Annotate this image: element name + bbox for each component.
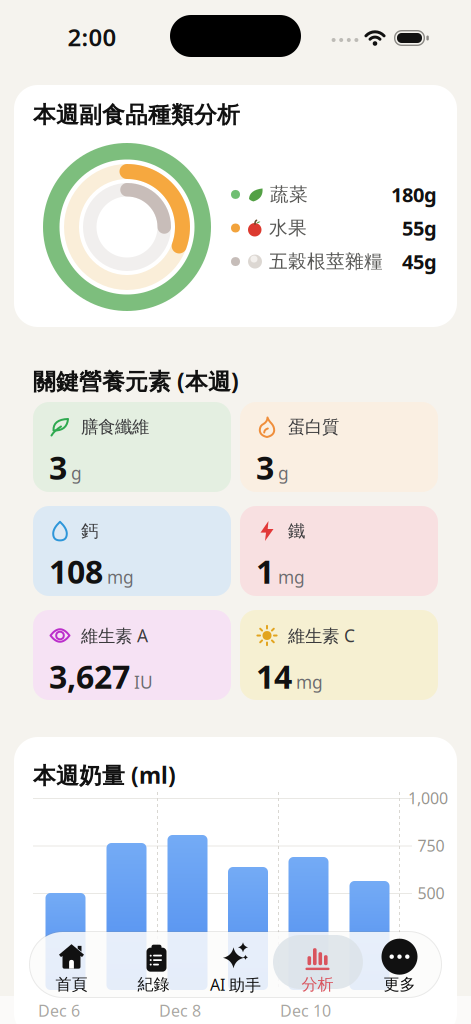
staticText: 首頁 xyxy=(55,975,87,994)
staticText: 維生素 C xyxy=(288,624,355,647)
staticText: 膳食纖維 xyxy=(81,416,149,438)
staticText: 分析 xyxy=(301,975,333,994)
staticText: 五穀根莖雜糧 xyxy=(269,250,383,273)
button[interactable]: 紀錄 xyxy=(112,937,194,999)
staticText: mg xyxy=(296,670,323,693)
staticText: 蛋白質 xyxy=(288,416,339,438)
staticText: 750 xyxy=(417,835,444,856)
staticText: 500 xyxy=(417,882,444,904)
staticText: g xyxy=(278,461,289,484)
staticText: Dec 10 xyxy=(280,1000,331,1021)
button[interactable]: AI 助手 xyxy=(194,937,276,999)
staticText: IU xyxy=(134,670,153,693)
staticText: 55g xyxy=(402,215,437,241)
staticText: 1 xyxy=(256,550,274,592)
staticText: 本週副食品種類分析 xyxy=(33,101,240,129)
staticText: AI 助手 xyxy=(210,974,261,995)
staticText: 關鍵營養元素 (本週) xyxy=(33,366,239,396)
button[interactable]: 首頁 xyxy=(30,937,112,999)
staticText: Dec 8 xyxy=(159,1000,201,1021)
staticText: 45g xyxy=(402,248,437,275)
staticText: mg xyxy=(278,565,305,588)
staticText: mg xyxy=(107,565,134,588)
staticText: 180g xyxy=(391,181,437,208)
staticText: Dec 6 xyxy=(38,1000,80,1021)
staticText: 108 xyxy=(49,550,103,592)
staticText: g xyxy=(71,461,82,484)
staticText: 紀錄 xyxy=(137,975,169,994)
staticText: 鈣 xyxy=(81,520,98,542)
staticText: 更多 xyxy=(383,975,415,994)
staticText: 維生素 A xyxy=(81,624,148,647)
button[interactable]: 更多 xyxy=(358,937,440,999)
staticText: 蔬菜 xyxy=(270,183,308,206)
button[interactable]: 分析 xyxy=(276,937,358,999)
staticText: 3 xyxy=(49,446,67,488)
staticText: 14 xyxy=(256,655,292,697)
staticText: 鐵 xyxy=(288,520,305,542)
staticText: 1,000 xyxy=(408,787,448,809)
staticText: 3 xyxy=(256,446,274,488)
staticText: 2:00 xyxy=(67,21,116,53)
staticText: 水果 xyxy=(269,216,307,239)
staticText: 本週奶量 (ml) xyxy=(33,760,176,790)
staticText: 3,627 xyxy=(49,655,130,697)
